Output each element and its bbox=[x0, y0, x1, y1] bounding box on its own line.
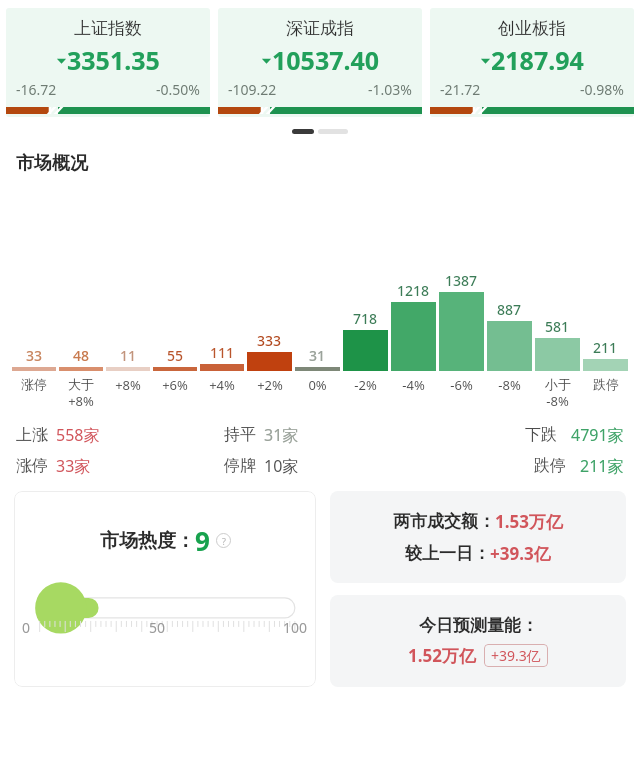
staticText: -0.98% bbox=[580, 80, 624, 99]
staticText: 今日预测量能： bbox=[419, 615, 538, 636]
staticText: +8% bbox=[68, 392, 94, 410]
staticText: 333 bbox=[257, 331, 282, 350]
staticText: 211 bbox=[593, 338, 618, 357]
staticText: 55 bbox=[167, 346, 184, 365]
staticText: 1.53万亿 bbox=[495, 510, 563, 533]
staticText: 10537.40 bbox=[272, 43, 380, 77]
button[interactable]: 市场热度： bbox=[14, 491, 316, 687]
staticText: 深证成指 bbox=[286, 18, 354, 39]
staticText: 上证指数 bbox=[74, 18, 142, 39]
staticText: 4791家 bbox=[571, 424, 624, 446]
staticText: -1.03% bbox=[368, 80, 412, 99]
staticText: +39.3亿 bbox=[490, 542, 551, 565]
staticText: 887 bbox=[497, 300, 522, 319]
staticText: 跌停 bbox=[593, 376, 619, 392]
staticText: +6% bbox=[162, 376, 188, 394]
staticText: -2% bbox=[354, 376, 377, 394]
staticText: -16.72 bbox=[16, 80, 57, 99]
staticText: 跌停 bbox=[534, 456, 566, 476]
staticText: 下跌 bbox=[525, 425, 557, 445]
staticText: -8% bbox=[546, 392, 569, 410]
staticText: +4% bbox=[209, 376, 235, 394]
staticText: 211家 bbox=[580, 455, 624, 477]
staticText: 0 bbox=[22, 618, 31, 637]
staticText: -109.22 bbox=[228, 80, 277, 99]
staticText: 小于 bbox=[545, 376, 571, 392]
button[interactable]: 两市成交额： bbox=[330, 491, 626, 583]
staticText: 大于 bbox=[68, 376, 94, 392]
staticText: -8% bbox=[498, 376, 521, 394]
staticText: 558家 bbox=[56, 424, 100, 446]
staticText: -21.72 bbox=[440, 80, 481, 99]
staticText: 11 bbox=[120, 346, 137, 365]
staticText: +2% bbox=[257, 376, 283, 394]
staticText: 1387 bbox=[445, 271, 478, 290]
staticText: 718 bbox=[353, 309, 378, 328]
staticText: 1218 bbox=[397, 281, 430, 300]
staticText: 上涨 bbox=[16, 425, 48, 445]
staticText: -6% bbox=[450, 376, 473, 394]
button[interactable]: 深证成指 bbox=[218, 8, 422, 117]
button[interactable]: 说明 bbox=[216, 533, 231, 548]
staticText: 581 bbox=[545, 317, 570, 336]
staticText: 0% bbox=[308, 376, 327, 394]
staticText: -0.50% bbox=[156, 80, 200, 99]
staticText: 31 bbox=[309, 346, 326, 365]
button[interactable]: 创业板指 bbox=[430, 8, 634, 117]
staticText: ? bbox=[222, 535, 226, 547]
staticText: 100 bbox=[283, 618, 308, 637]
staticText: 涨停 bbox=[21, 376, 47, 392]
staticText: 9 bbox=[195, 523, 210, 558]
staticText: 停牌 bbox=[224, 456, 256, 476]
staticText: 111 bbox=[210, 343, 235, 362]
staticText: -4% bbox=[402, 376, 425, 394]
staticText: 持平 bbox=[224, 425, 256, 445]
staticText: 50 bbox=[149, 618, 166, 637]
staticText: 10家 bbox=[264, 455, 299, 477]
button[interactable]: 上证指数 bbox=[6, 8, 210, 117]
staticText: +39.3亿 bbox=[491, 646, 541, 665]
staticText: 33家 bbox=[56, 455, 91, 477]
staticText: 33 bbox=[26, 346, 43, 365]
staticText: 48 bbox=[73, 346, 90, 365]
staticText: 31家 bbox=[264, 424, 299, 446]
staticText: 2187.94 bbox=[491, 43, 584, 77]
staticText: 1.52万亿 bbox=[408, 644, 476, 667]
staticText: +8% bbox=[115, 376, 141, 394]
staticText: 市场概况 bbox=[16, 152, 88, 175]
staticText: 两市成交额： bbox=[393, 511, 495, 532]
staticText: 创业板指 bbox=[498, 18, 566, 39]
staticText: 较上一日： bbox=[405, 543, 490, 564]
staticText: 市场热度： bbox=[100, 529, 195, 553]
button[interactable]: 今日预测量能： bbox=[330, 595, 626, 687]
staticText: 3351.35 bbox=[67, 43, 160, 77]
staticText: 涨停 bbox=[16, 456, 48, 476]
